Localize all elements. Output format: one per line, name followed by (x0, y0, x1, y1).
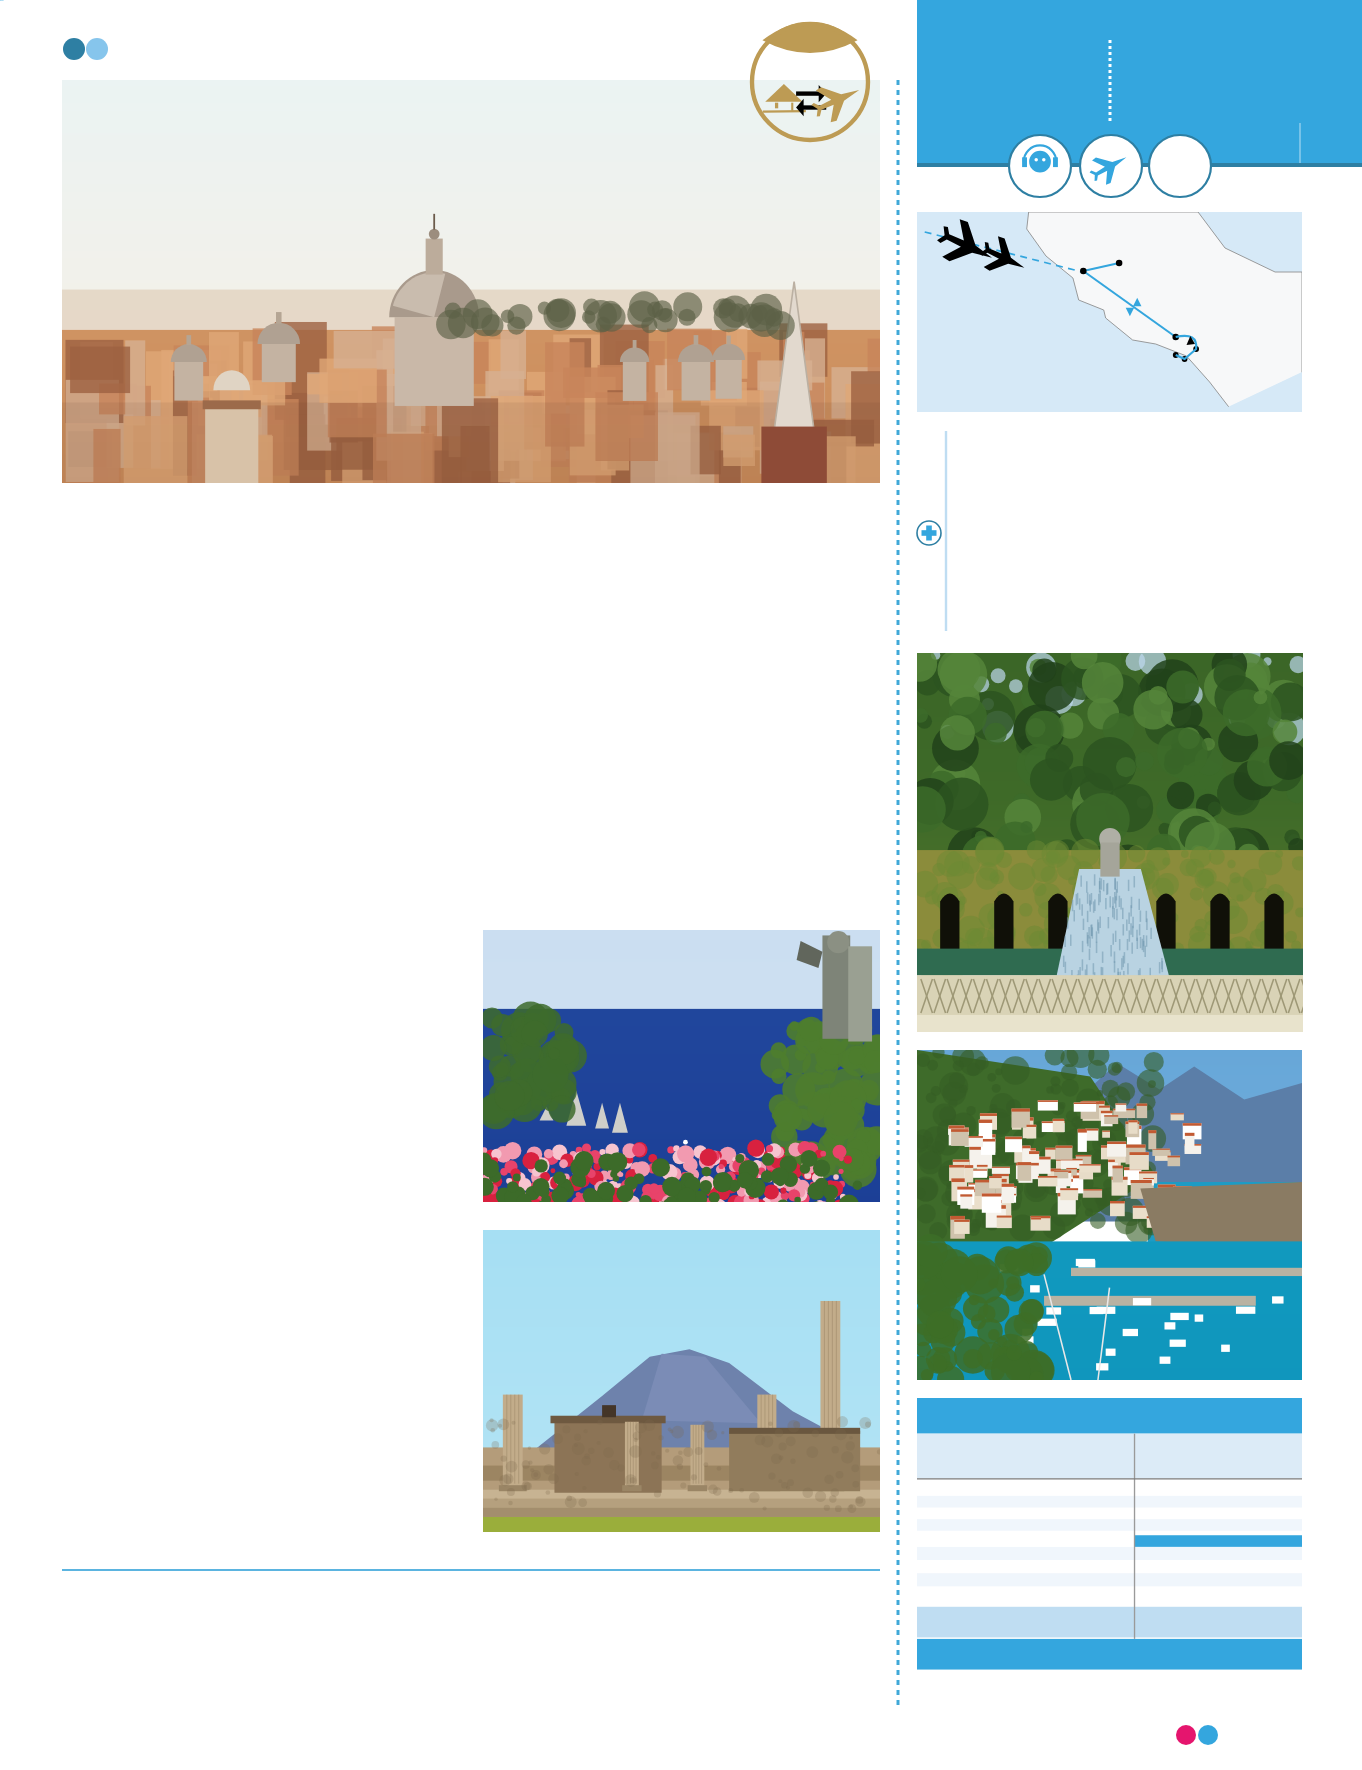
staticText: bt tours (0, 0, 4, 1)
